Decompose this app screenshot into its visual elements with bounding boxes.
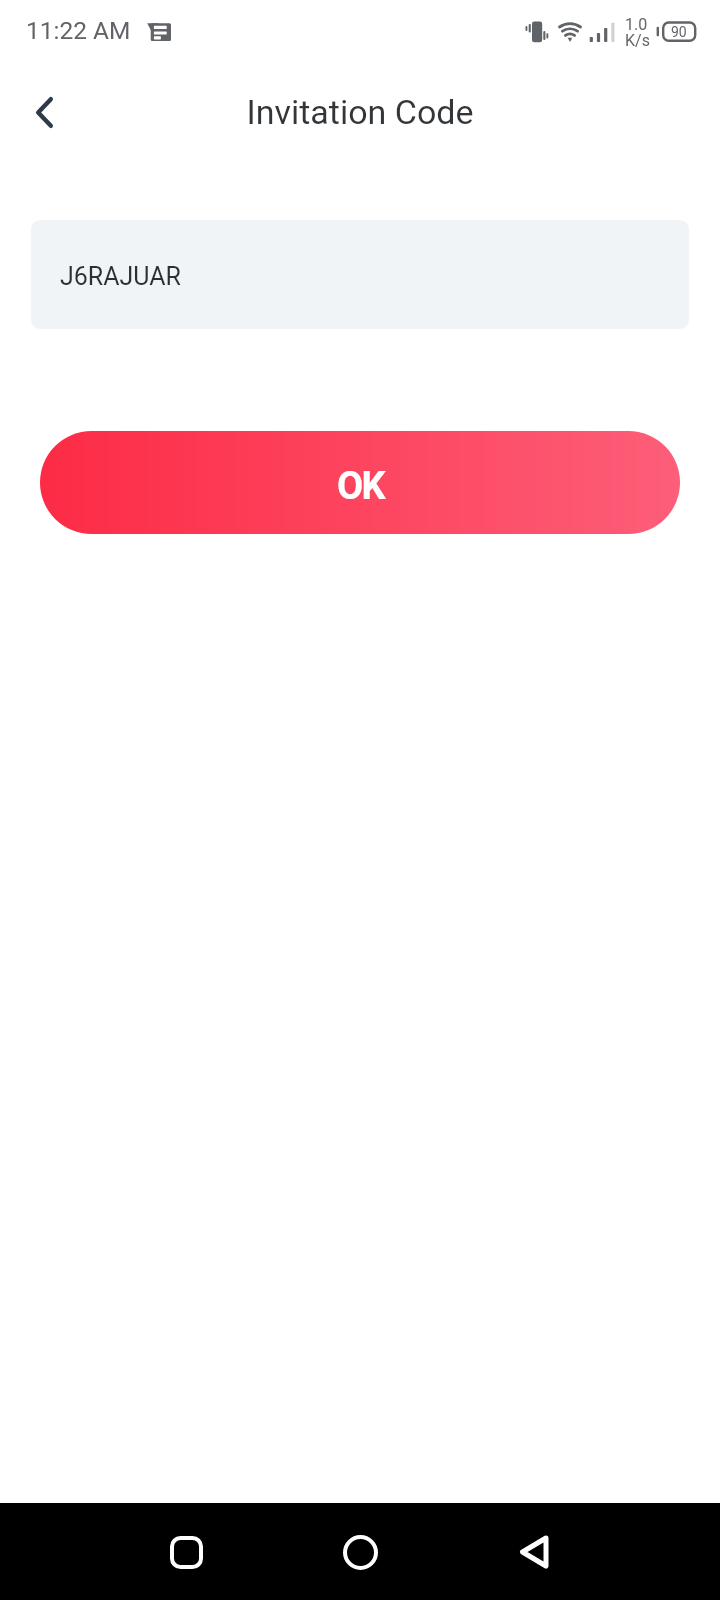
button[interactable]: Back xyxy=(8,76,80,148)
staticText: 90 xyxy=(671,24,687,40)
staticText: 11:22 AM xyxy=(26,16,131,45)
staticText: K/s xyxy=(625,31,650,50)
staticText: J6RAJUAR xyxy=(60,262,182,291)
button[interactable]: Back xyxy=(489,1507,579,1597)
button[interactable]: Recent apps xyxy=(141,1507,231,1597)
staticText: Invitation Code xyxy=(246,92,474,132)
staticText: 1.0 xyxy=(625,15,648,34)
button[interactable]: J6RAJUAR xyxy=(31,220,689,329)
staticText: OK xyxy=(337,464,384,509)
button[interactable]: Home xyxy=(315,1507,405,1597)
button[interactable]: OK xyxy=(40,431,680,534)
